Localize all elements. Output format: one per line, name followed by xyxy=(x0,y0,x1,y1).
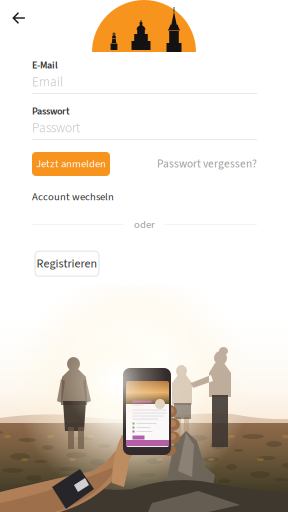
staticText: Account wechseln xyxy=(32,189,114,205)
button[interactable]: Back xyxy=(1,1,37,35)
button[interactable]: Registrieren xyxy=(35,251,99,276)
staticText: Email xyxy=(32,72,63,91)
button[interactable]: Jetzt anmelden xyxy=(32,152,110,176)
staticText: Passwort vergessen? xyxy=(157,156,257,172)
staticText: Registrieren xyxy=(36,255,97,272)
staticText: Passwort xyxy=(32,118,80,137)
staticText: oder xyxy=(134,217,155,232)
button[interactable]: Account wechseln xyxy=(32,189,114,205)
staticText: E-Mail xyxy=(32,58,58,73)
button[interactable]: Passwort vergessen? xyxy=(157,156,257,172)
staticText: Passwort xyxy=(32,104,70,119)
staticText: Jetzt anmelden xyxy=(36,156,106,172)
